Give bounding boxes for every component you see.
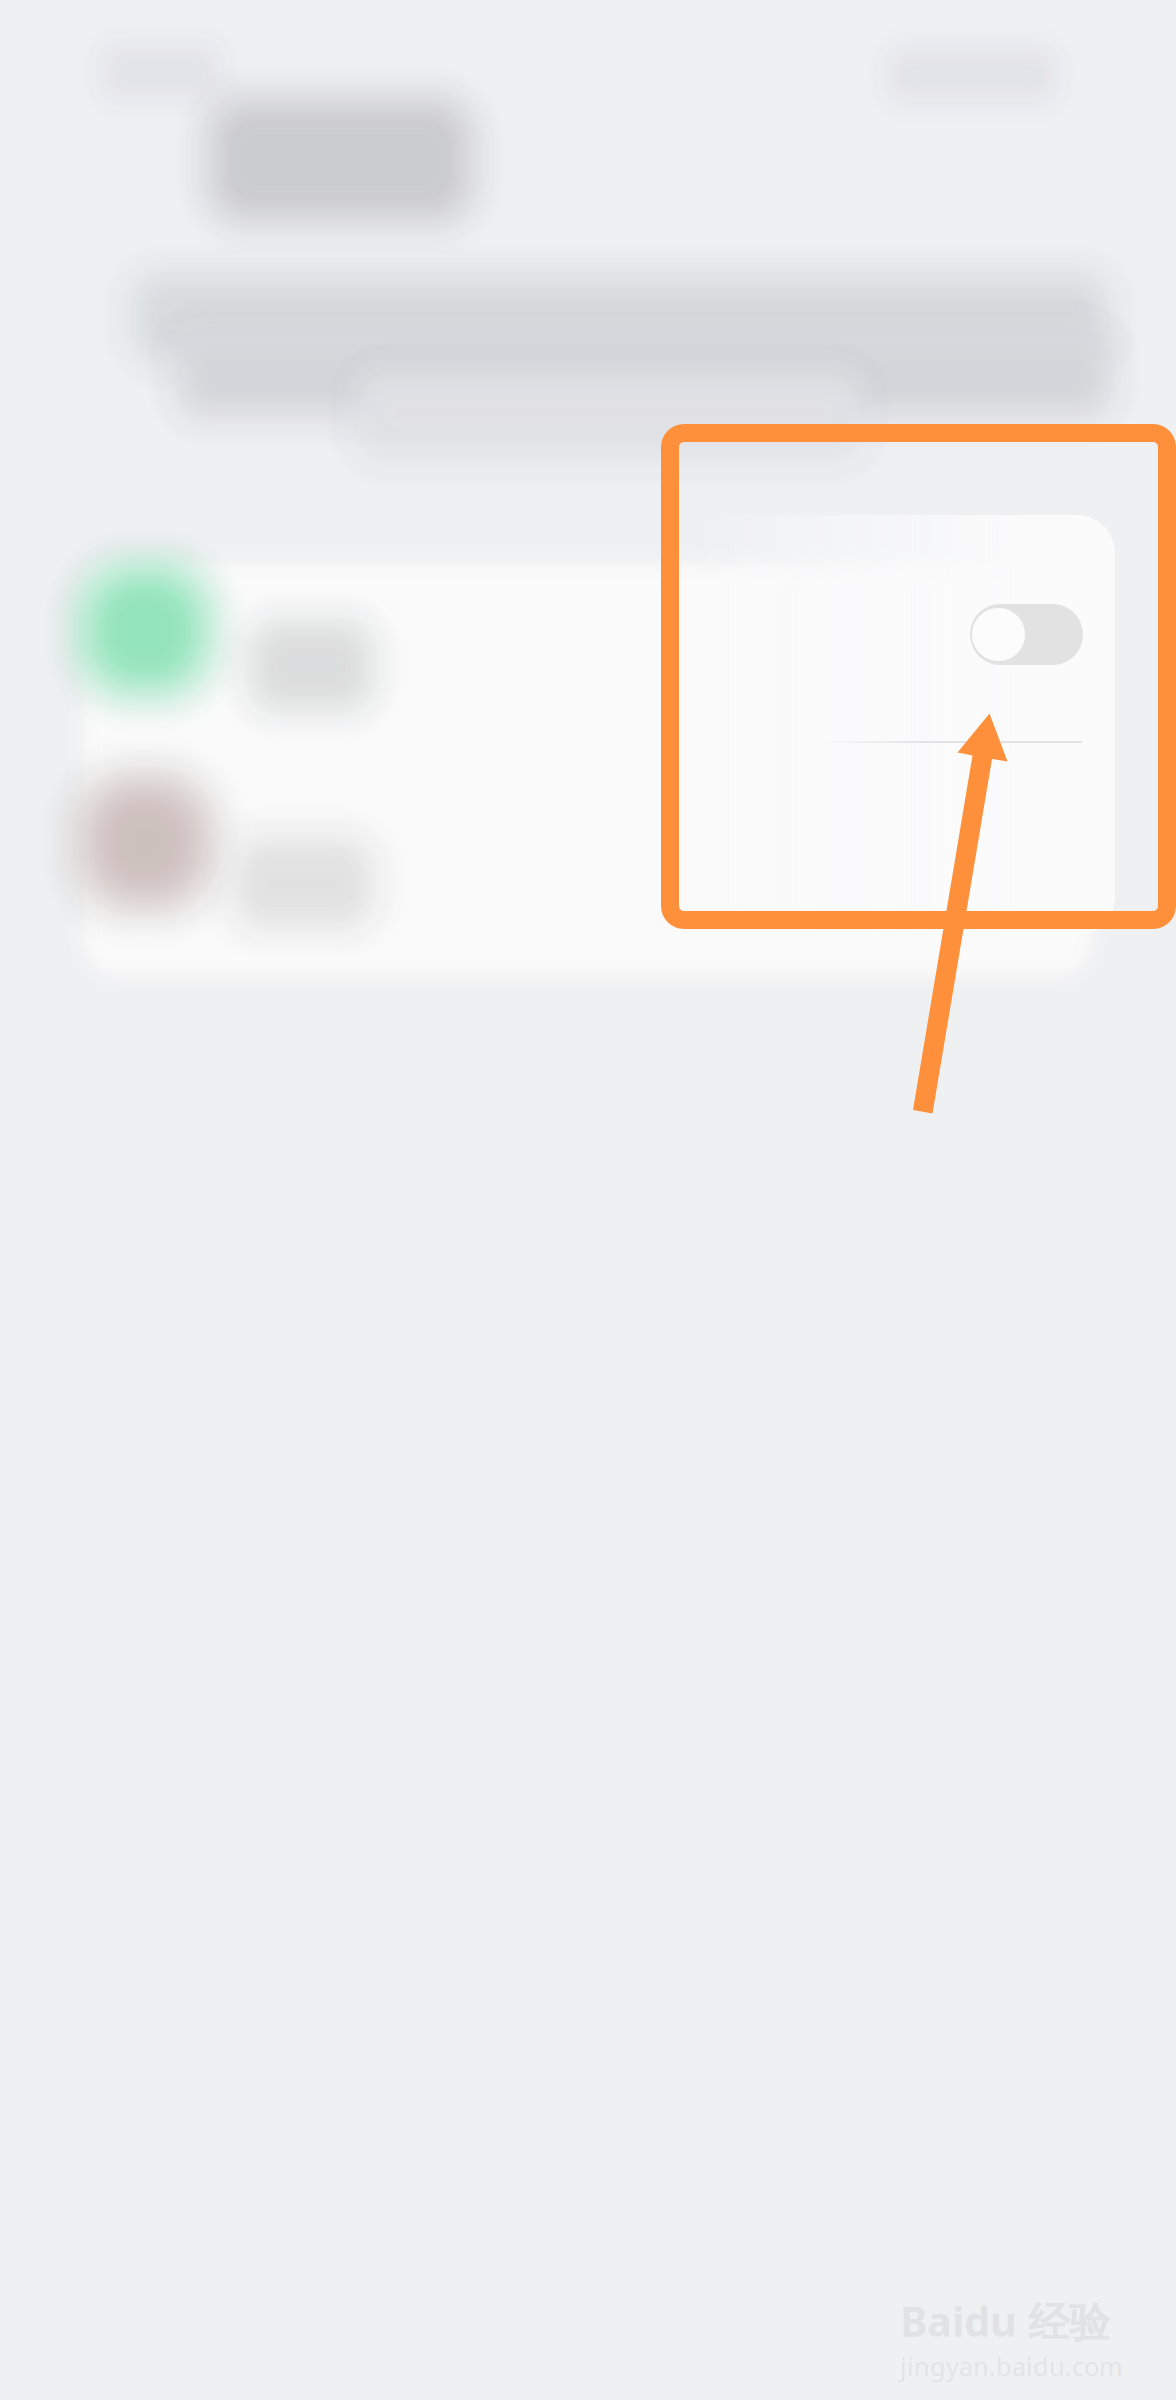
button[interactable]: Toggle switch bbox=[970, 604, 1083, 665]
staticText: jingyan.baidu.com bbox=[900, 2349, 1123, 2383]
staticText: Baidu 经验 bbox=[900, 2292, 1110, 2349]
